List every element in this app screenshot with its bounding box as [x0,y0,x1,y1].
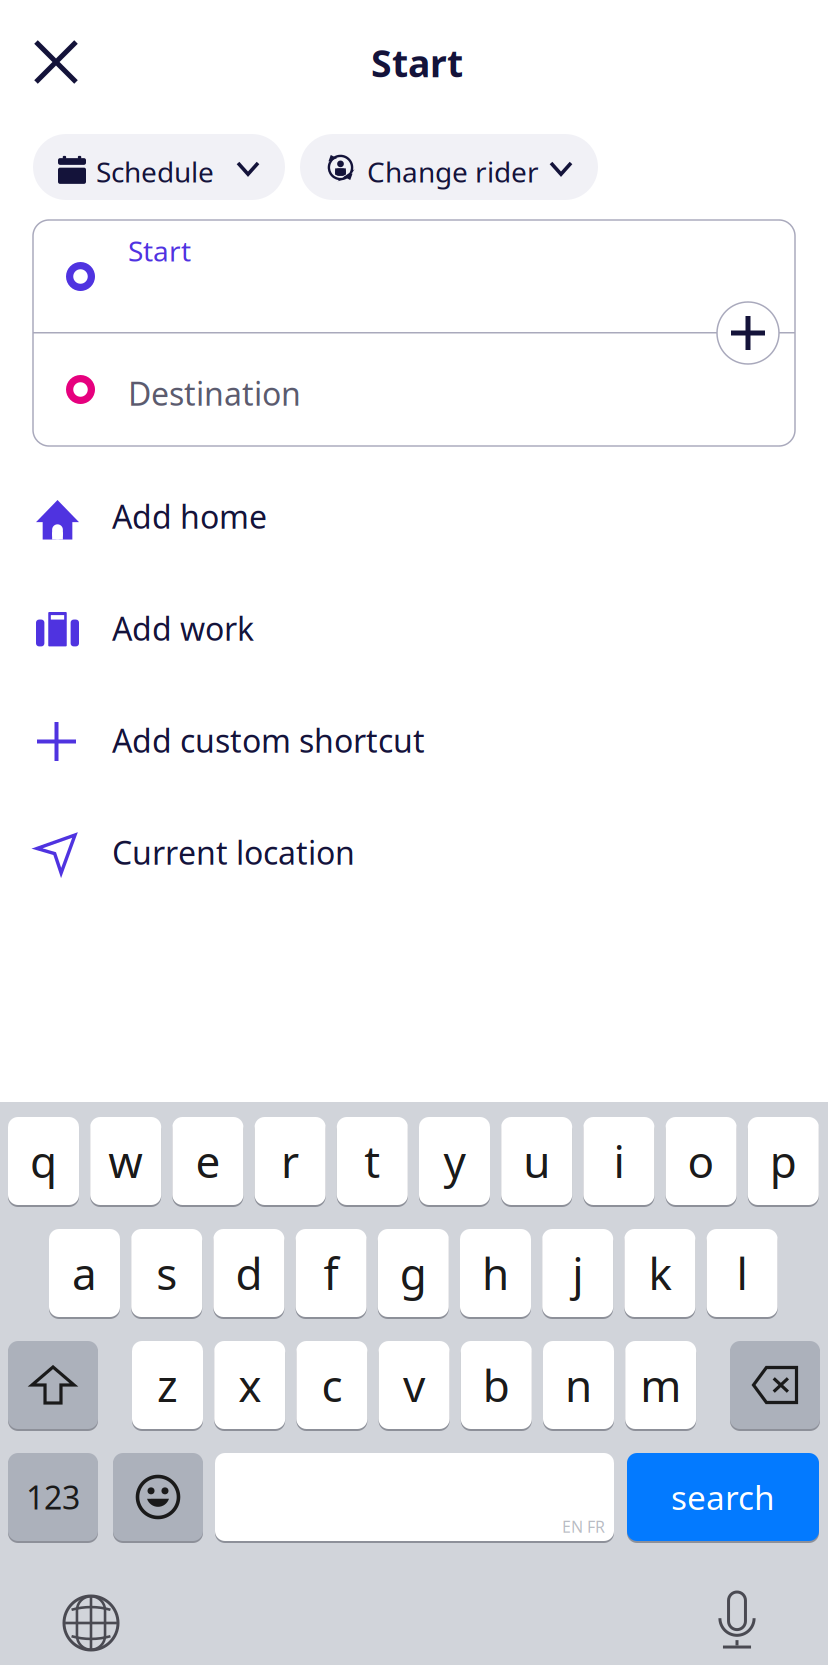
button[interactable]: Shift [8,1340,98,1430]
button[interactable]: m [625,1340,696,1430]
staticText: h [482,1244,509,1302]
staticText: g [400,1244,427,1302]
staticText: Start [371,38,463,88]
staticText: Add home [112,495,267,537]
button[interactable]: search [627,1452,819,1542]
staticText: d [235,1244,262,1302]
button[interactable]: o [666,1116,737,1206]
button[interactable]: z [132,1340,203,1430]
button[interactable]: q [8,1116,79,1206]
staticText: b [483,1356,510,1414]
button[interactable]: Schedule [33,134,285,200]
staticText: q [30,1132,57,1190]
staticText: c [321,1356,342,1414]
staticText: Current location [112,831,355,873]
staticText: k [648,1244,671,1302]
button[interactable]: Add home [0,461,828,573]
button[interactable]: 123 [8,1452,98,1542]
staticText: search [671,1475,775,1519]
staticText: f [324,1244,339,1302]
button[interactable]: s [131,1228,202,1318]
button[interactable]: y [419,1116,490,1206]
staticText: Add work [112,607,254,649]
button[interactable]: d [213,1228,284,1318]
button[interactable]: Current location [0,797,828,909]
staticText: EN FR [562,1516,605,1537]
button[interactable]: h [460,1228,531,1318]
button[interactable]: Close [36,42,76,82]
button[interactable]: l [707,1228,778,1318]
staticText: Start [128,232,191,269]
button[interactable]: t [337,1116,408,1206]
staticText: o [688,1132,715,1190]
staticText: z [157,1356,178,1414]
button[interactable]: Next keyboard [64,1596,118,1650]
button[interactable]: Destination [33,333,795,446]
button[interactable]: v [379,1340,450,1430]
staticText: m [640,1356,681,1414]
staticText: i [613,1132,624,1190]
button[interactable]: b [461,1340,532,1430]
button[interactable]: Start [33,220,795,333]
staticText: u [523,1132,550,1190]
staticText: x [238,1356,261,1414]
staticText: j [572,1244,583,1302]
button[interactable]: u [501,1116,572,1206]
button[interactable]: x [214,1340,285,1430]
button[interactable]: f [296,1228,367,1318]
staticText: v [403,1356,425,1414]
button[interactable]: Dictate [719,1592,755,1649]
staticText: s [156,1244,177,1302]
button[interactable]: p [748,1116,819,1206]
button[interactable]: Add work [0,573,828,685]
button[interactable]: Add custom shortcut [0,685,828,797]
staticText: Change rider [367,153,539,190]
button[interactable]: i [583,1116,654,1206]
button[interactable]: j [542,1228,613,1318]
staticText: t [364,1132,380,1190]
staticText: a [72,1244,97,1302]
staticText: l [737,1244,748,1302]
button[interactable]: Emoji [113,1452,203,1542]
staticText: y [443,1132,465,1190]
staticText: r [281,1132,299,1190]
staticText: n [565,1356,592,1414]
button[interactable]: c [296,1340,367,1430]
button[interactable]: w [90,1116,161,1206]
staticText: 123 [26,1476,80,1518]
button[interactable]: Space [215,1452,614,1542]
staticText: Schedule [96,153,214,190]
staticText: p [770,1132,797,1190]
staticText: Destination [128,372,301,414]
button[interactable]: r [255,1116,326,1206]
staticText: e [195,1132,220,1190]
button[interactable]: Add stop [717,302,779,364]
button[interactable]: a [49,1228,120,1318]
button[interactable]: Delete [730,1340,820,1430]
button[interactable]: e [172,1116,243,1206]
staticText: Add custom shortcut [112,719,425,761]
button[interactable]: Change rider [300,134,598,200]
button[interactable]: k [624,1228,695,1318]
button[interactable]: g [378,1228,449,1318]
staticText: w [108,1132,143,1190]
button[interactable]: n [543,1340,614,1430]
